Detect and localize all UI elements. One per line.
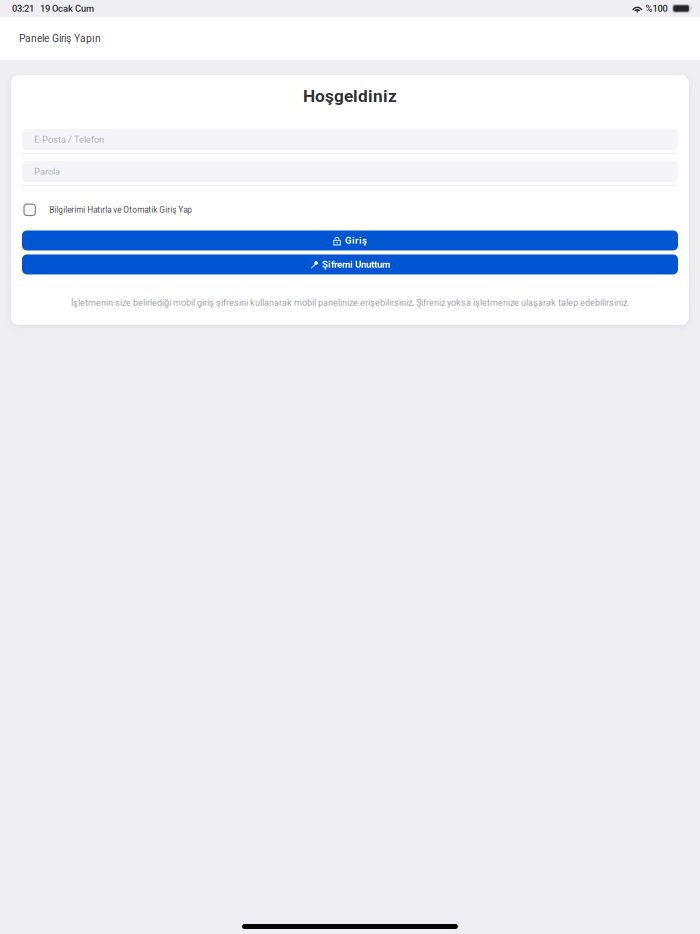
button[interactable]: E-Posta / Telefon bbox=[11, 129, 689, 150]
staticText: Giriş bbox=[345, 235, 367, 246]
button[interactable]: Parola bbox=[11, 161, 689, 182]
staticText: Parola bbox=[34, 166, 60, 177]
staticText: 03:21 bbox=[12, 3, 34, 14]
staticText: E-Posta / Telefon bbox=[34, 134, 104, 145]
staticText: 19 Ocak Cum bbox=[40, 3, 94, 14]
staticText: İşletmenin size belirlediği mobil giriş … bbox=[71, 297, 629, 308]
staticText: Hoşgeldiniz bbox=[303, 86, 397, 106]
button[interactable]: Şifremi Unuttum bbox=[11, 250, 689, 274]
staticText: %100 bbox=[646, 3, 668, 14]
staticText: Bilgilerimi Hatırla ve Otomatik Giriş Ya… bbox=[49, 205, 192, 215]
staticText: Şifremi Unuttum bbox=[322, 259, 390, 270]
button[interactable]: Giriş bbox=[11, 230, 689, 250]
staticText: Panele Giriş Yapın bbox=[19, 32, 101, 44]
button[interactable]: Bilgilerimi Hatırla ve Otomatik Giriş Ya… bbox=[11, 186, 689, 230]
